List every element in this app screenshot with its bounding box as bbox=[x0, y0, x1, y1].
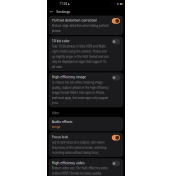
staticText: To reduce file size while retaining imag… bbox=[0, 41, 172, 176]
button[interactable]: High efficiency image bbox=[0, 0, 172, 176]
staticText: High efficiency image bbox=[0, 4, 85, 32]
